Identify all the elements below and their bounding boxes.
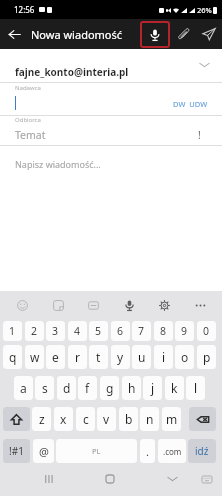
button[interactable]: . <box>140 439 155 463</box>
staticText: e <box>52 349 59 365</box>
button[interactable]: n <box>140 407 159 431</box>
staticText: k <box>171 380 178 396</box>
staticText: 12:56 <box>14 4 35 15</box>
button[interactable]: u <box>132 345 151 369</box>
staticText: v <box>103 411 110 427</box>
staticText: 8 <box>160 324 167 338</box>
button[interactable]: @ <box>33 439 54 463</box>
staticText: Napisz wiadomość... <box>15 158 101 170</box>
button[interactable]: idź <box>188 439 216 463</box>
button[interactable]: 0 <box>197 321 216 341</box>
staticText: x <box>60 411 67 427</box>
staticText: n <box>146 411 154 427</box>
button[interactable]: !#1 <box>3 439 30 463</box>
staticText: Nadawca <box>15 84 41 92</box>
staticText: ! <box>198 128 201 142</box>
staticText: s <box>42 380 48 396</box>
staticText: y <box>117 349 124 365</box>
button[interactable]: DW UDW <box>173 99 208 109</box>
button[interactable]: x <box>54 407 73 431</box>
staticText: d <box>63 380 71 396</box>
button[interactable]: m <box>162 407 181 431</box>
staticText: j <box>151 380 155 396</box>
button[interactable]: Back <box>0 19 28 49</box>
button[interactable]: 4 <box>68 321 87 341</box>
staticText: fajne_konto@interia.pl <box>15 65 129 79</box>
staticText: p <box>203 349 211 365</box>
button[interactable]: 7 <box>132 321 151 341</box>
button[interactable]: p <box>197 345 216 369</box>
button[interactable]: 8 <box>154 321 173 341</box>
button[interactable]: fajne_konto@interia.pl <box>0 49 222 82</box>
staticText: Odbiorca <box>15 116 41 124</box>
button[interactable]: Hide keyboard <box>157 462 187 496</box>
button[interactable]: Shift <box>3 407 30 431</box>
staticText: o <box>181 349 189 365</box>
button[interactable]: More options <box>187 292 213 318</box>
button[interactable]: c <box>76 407 95 431</box>
staticText: b <box>125 411 133 427</box>
button[interactable]: t <box>89 345 108 369</box>
button[interactable]: o <box>175 345 194 369</box>
button[interactable]: b <box>119 407 138 431</box>
button[interactable]: 5 <box>89 321 108 341</box>
button[interactable]: h <box>122 376 141 400</box>
button[interactable]: e <box>46 345 65 369</box>
button[interactable]: r <box>68 345 87 369</box>
button[interactable]: v <box>97 407 116 431</box>
button[interactable]: z <box>32 407 51 431</box>
button[interactable]: PL <box>56 439 137 463</box>
staticText: @ <box>39 444 49 459</box>
button[interactable]: a <box>14 376 33 400</box>
button[interactable]: Change keyboard <box>192 462 222 496</box>
button[interactable]: Voice input <box>140 21 170 48</box>
staticText: 7 <box>138 324 145 338</box>
button[interactable]: Backspace <box>189 407 216 431</box>
button[interactable]: Recent apps <box>34 462 64 496</box>
button[interactable]: 9 <box>175 321 194 341</box>
button[interactable]: 6 <box>111 321 130 341</box>
staticText: z <box>39 411 45 427</box>
button[interactable]: y <box>111 345 130 369</box>
button[interactable]: 1 <box>3 321 22 341</box>
staticText: c <box>83 411 89 427</box>
staticText: i <box>162 349 166 365</box>
button[interactable]: Nadawca <box>0 83 222 115</box>
staticText: Nowa wiadomość <box>31 27 123 42</box>
button[interactable]: i <box>154 345 173 369</box>
button[interactable]: l <box>186 376 205 400</box>
button[interactable]: f <box>78 376 97 400</box>
button[interactable]: 3 <box>46 321 65 341</box>
staticText: f <box>85 380 90 396</box>
staticText: 6 <box>117 324 124 338</box>
button[interactable]: Napisz wiadomość... <box>0 146 222 242</box>
staticText: 0 <box>203 324 210 338</box>
button[interactable]: Emoji <box>9 292 35 318</box>
button[interactable]: Home <box>95 462 125 496</box>
button[interactable]: .com <box>158 439 186 463</box>
button[interactable]: Send <box>196 19 222 49</box>
button[interactable]: q <box>3 345 22 369</box>
button[interactable]: Keyboard settings <box>151 292 177 318</box>
staticText: idź <box>195 444 209 458</box>
button[interactable]: Attach file <box>170 19 196 49</box>
staticText: l <box>194 380 198 396</box>
button[interactable]: j <box>143 376 162 400</box>
staticText: 3 <box>52 324 59 338</box>
staticText: PL <box>92 446 101 456</box>
staticText: Temat <box>15 128 46 142</box>
button[interactable]: Clipboard <box>80 292 106 318</box>
staticText: 4 <box>74 324 81 338</box>
button[interactable]: s <box>35 376 54 400</box>
button[interactable]: g <box>100 376 119 400</box>
staticText: 1 <box>9 324 16 338</box>
button[interactable]: Odbiorca <box>0 116 222 145</box>
staticText: r <box>75 349 80 365</box>
button[interactable]: d <box>57 376 76 400</box>
button[interactable]: Stickers <box>45 292 71 318</box>
button[interactable]: k <box>165 376 184 400</box>
button[interactable]: Voice typing <box>116 292 142 318</box>
staticText: m <box>166 411 178 427</box>
button[interactable]: 2 <box>25 321 44 341</box>
button[interactable]: w <box>25 345 44 369</box>
